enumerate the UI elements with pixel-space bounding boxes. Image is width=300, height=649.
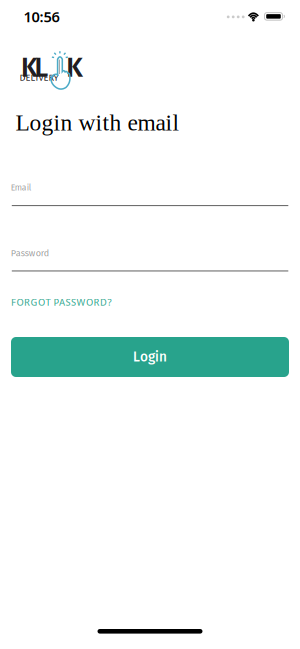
staticText: Login [133, 349, 167, 365]
staticText: Email [11, 182, 32, 193]
staticText: FORGOT PASSWORD? [11, 296, 111, 308]
staticText: Password [11, 248, 49, 259]
staticText: 10:56 [23, 7, 59, 26]
button[interactable]: Password [12, 247, 288, 273]
button[interactable]: FORGOT PASSWORD? [11, 296, 111, 308]
staticText: Login with email [15, 109, 179, 135]
button[interactable]: Login [11, 337, 289, 377]
button[interactable]: Email [12, 182, 288, 207]
staticText: K [21, 52, 38, 84]
staticText: L [35, 52, 49, 84]
staticText: DELIVERY [19, 72, 58, 83]
staticText: K [66, 52, 83, 84]
